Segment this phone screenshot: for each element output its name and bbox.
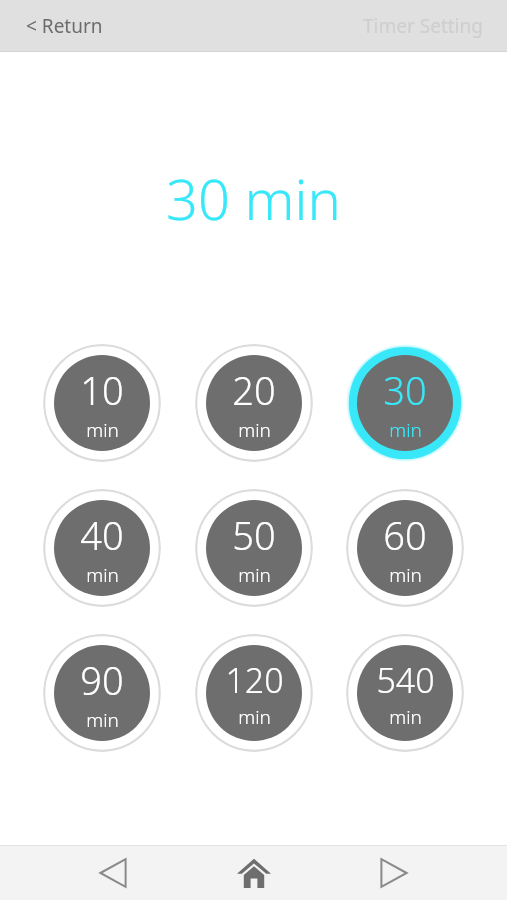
button[interactable]: 20 (195, 344, 313, 462)
staticText: 50 (232, 509, 276, 561)
staticText: min (238, 562, 271, 588)
staticText: 30 (383, 364, 427, 416)
button[interactable]: Back (85, 845, 141, 900)
button[interactable]: 90 (43, 634, 161, 752)
staticText: 120 (225, 657, 284, 703)
button[interactable]: < Return (0, 5, 119, 47)
staticText: < Return (26, 13, 103, 39)
button[interactable]: 540 (346, 634, 464, 752)
button[interactable]: 60 (346, 489, 464, 607)
button[interactable]: 40 (43, 489, 161, 607)
staticText: min (86, 707, 119, 733)
staticText: Timer Setting (363, 13, 483, 39)
staticText: min (238, 704, 271, 730)
button[interactable]: 120 (195, 634, 313, 752)
staticText: 60 (383, 509, 427, 561)
button[interactable]: 50 (195, 489, 313, 607)
staticText: min (86, 562, 119, 588)
staticText: min (389, 704, 422, 730)
staticText: min (238, 417, 271, 443)
button[interactable]: Recents (366, 845, 422, 900)
button[interactable]: Home (226, 845, 282, 900)
staticText: 30 min (166, 160, 341, 236)
staticText: 90 (80, 654, 124, 706)
staticText: min (86, 417, 119, 443)
staticText: min (389, 417, 422, 443)
button[interactable]: 30 (346, 344, 464, 462)
staticText: 40 (80, 509, 124, 561)
staticText: min (389, 562, 422, 588)
staticText: 10 (80, 364, 124, 416)
staticText: 20 (232, 364, 276, 416)
staticText: 540 (376, 657, 435, 703)
button[interactable]: 10 (43, 344, 161, 462)
